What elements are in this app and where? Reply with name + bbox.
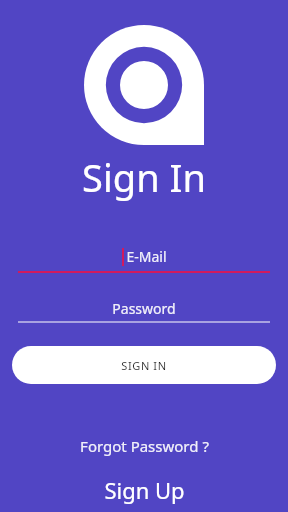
staticText: E-Mail (126, 247, 167, 266)
button[interactable]: SIGN IN (12, 346, 276, 384)
button[interactable]: Sign Up (92, 470, 197, 510)
staticText: Sign In (82, 151, 206, 203)
staticText: SIGN IN (121, 358, 167, 373)
staticText: Password (112, 299, 176, 318)
staticText: Forgot Password ? (80, 436, 209, 456)
button[interactable]: Password (18, 293, 270, 323)
staticText: Sign Up (104, 475, 185, 505)
button[interactable]: Forgot Password ? (68, 431, 221, 461)
other: App logo (84, 25, 204, 145)
button[interactable]: E-Mail (18, 239, 270, 273)
